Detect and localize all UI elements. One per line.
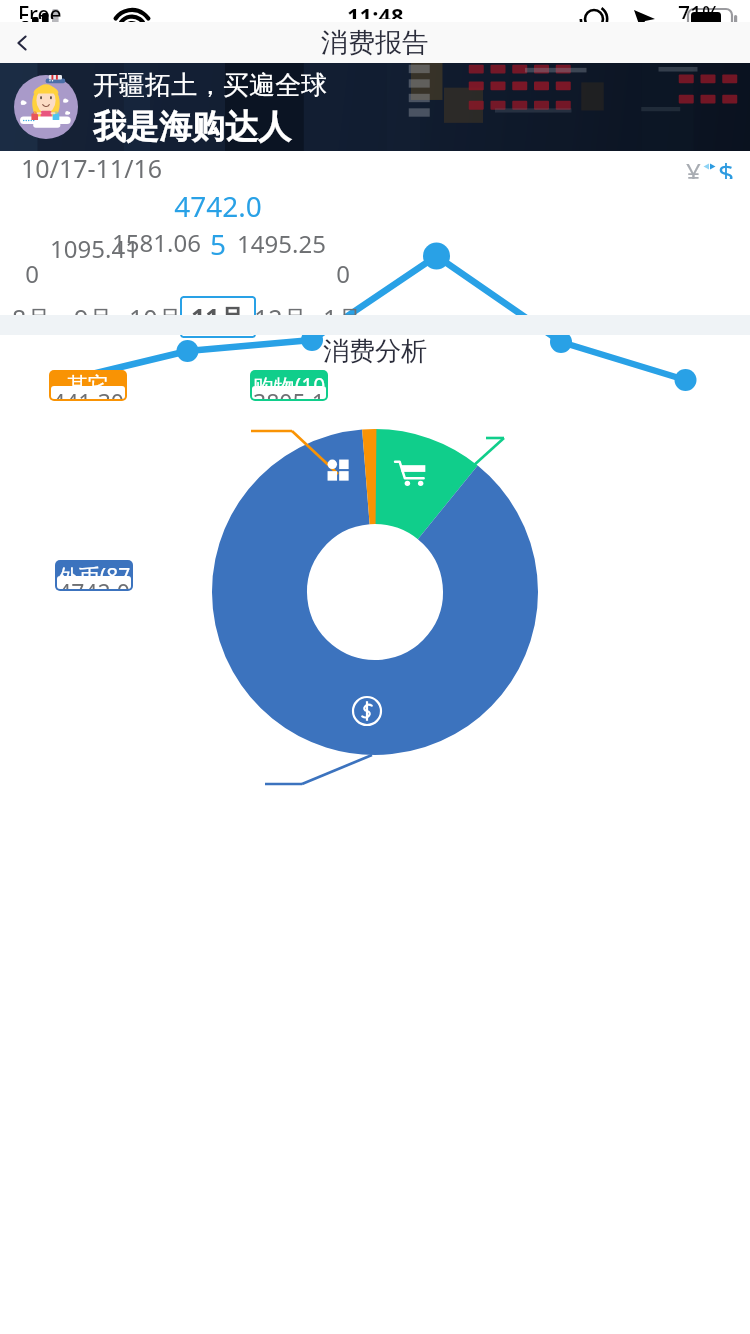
staticText: 11:48 <box>347 0 404 19</box>
staticText: 441.30 <box>52 386 124 399</box>
staticText: ¥ <box>686 154 701 179</box>
button[interactable]: 购物(10.85%) <box>250 370 328 401</box>
button[interactable]: 11月 <box>180 296 256 338</box>
button[interactable]: 9月 <box>63 296 125 340</box>
staticText: 我是海购达人 <box>93 106 291 148</box>
staticText: 1581.06 <box>112 226 201 259</box>
staticText: $ <box>718 154 735 179</box>
staticText: 购物(10.85%) <box>252 372 326 386</box>
staticText: 消费分析 <box>323 335 427 366</box>
button[interactable]: 10月 <box>118 296 194 340</box>
button[interactable]: 12月 <box>243 296 319 340</box>
staticText: 外币(87.89%) <box>57 562 131 576</box>
button[interactable]: Back <box>0 22 43 63</box>
button[interactable]: 其它(1.26%) <box>49 370 127 401</box>
staticText: 1月 <box>323 301 363 335</box>
staticText: 12月 <box>254 301 308 335</box>
button[interactable]: 外币(87.89%) <box>55 560 133 591</box>
staticText: 8月 <box>12 301 52 335</box>
staticText: 其它(1.26%) <box>51 372 125 386</box>
staticText: 3805.10 <box>252 386 326 399</box>
staticText: 消费报告 <box>321 26 429 60</box>
staticText: 0 <box>25 257 39 290</box>
staticText: 开疆拓土，买遍全球 <box>93 69 327 102</box>
staticText: 11月 <box>191 300 245 334</box>
staticText: 4742.05 <box>168 187 268 263</box>
staticText: 71% <box>678 0 720 19</box>
staticText: 0 <box>336 257 350 290</box>
staticText: 4742.05 <box>57 576 131 589</box>
staticText: 10/17-11/16 <box>21 151 163 182</box>
staticText: 1095.41 <box>50 232 139 265</box>
button[interactable]: 1月 <box>312 296 374 340</box>
staticText: 1495.25 <box>237 227 326 260</box>
staticText: 9月 <box>74 301 114 335</box>
staticText: 10月 <box>129 301 183 335</box>
button[interactable]: Switch currency <box>683 151 738 182</box>
button[interactable]: 8月 <box>1 296 63 340</box>
staticText: Free <box>18 0 62 19</box>
